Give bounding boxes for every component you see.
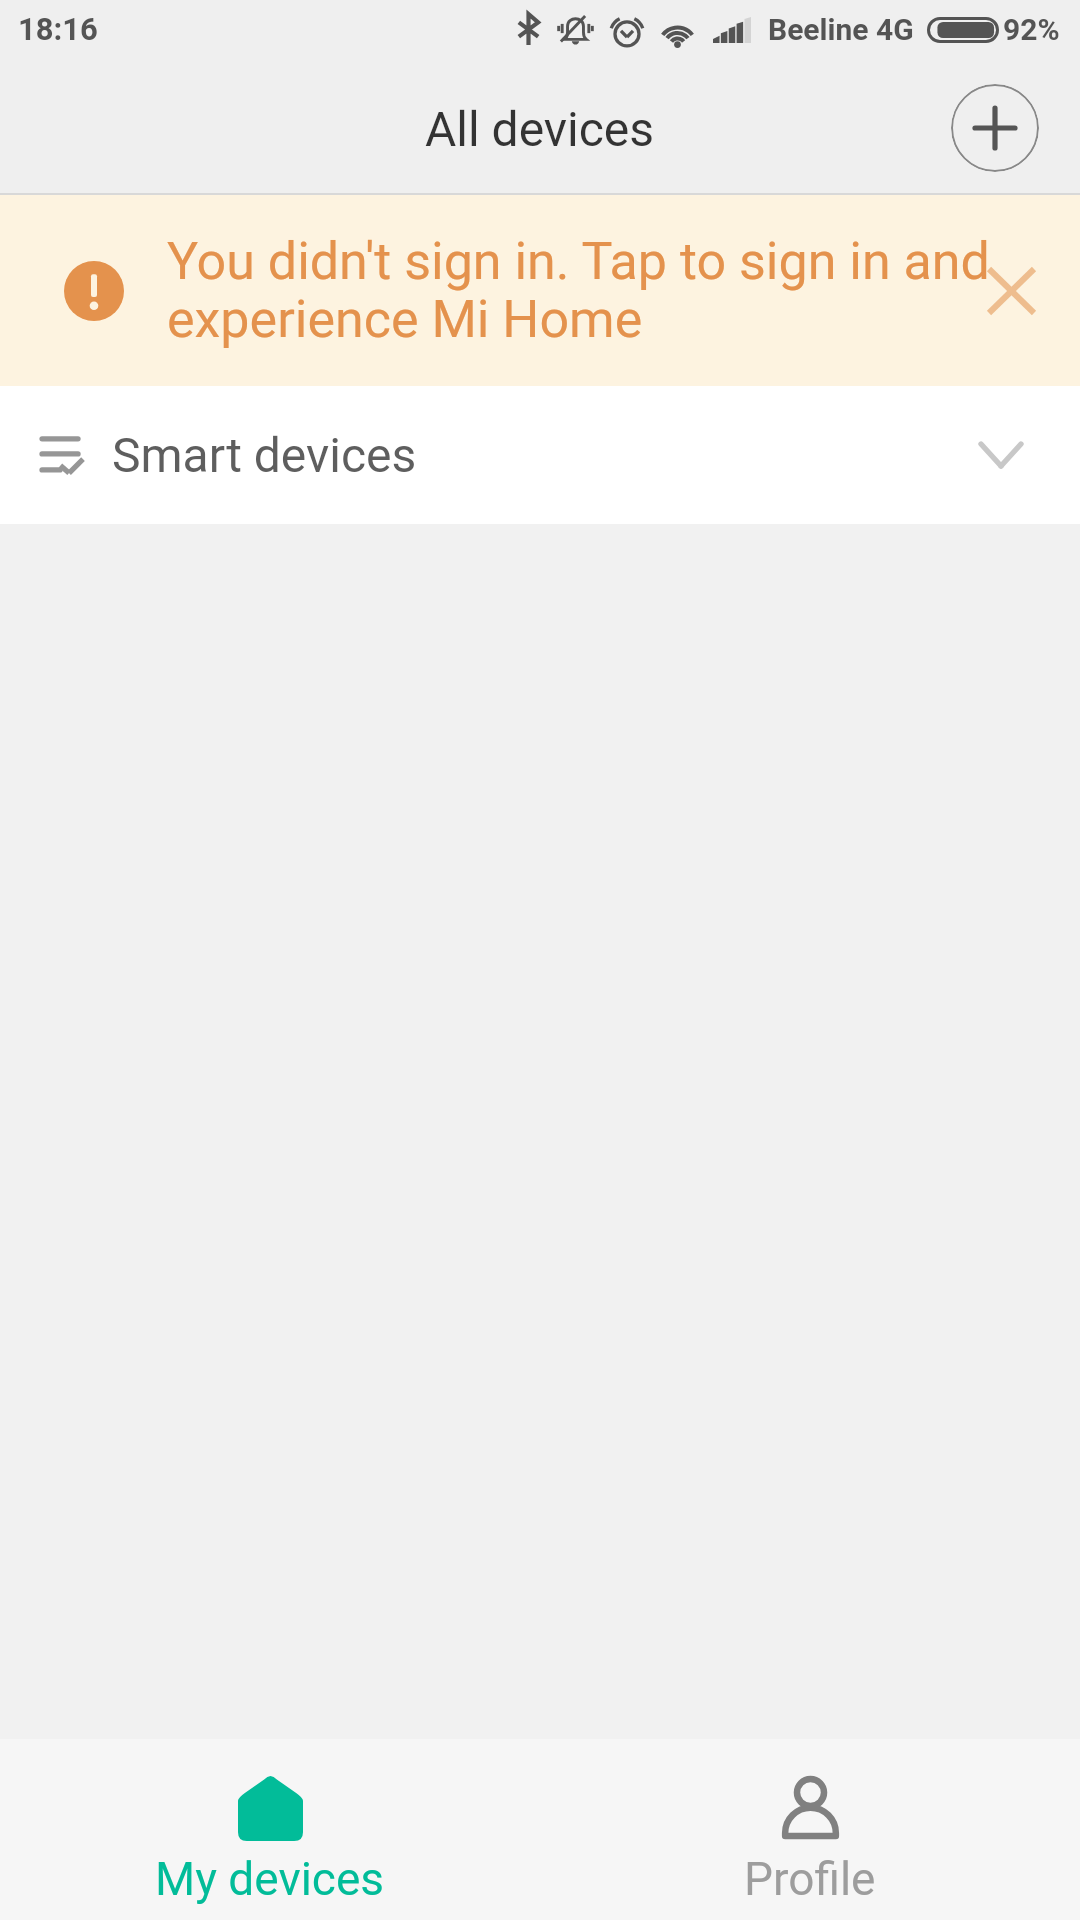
button[interactable]: Add device [951, 84, 1039, 172]
staticText: My devices [155, 1852, 385, 1906]
button[interactable]: My devices [0, 1739, 540, 1920]
button[interactable]: You didn't sign in. Tap to sign in and e… [0, 195, 1080, 386]
button[interactable]: Smart devices [0, 386, 1080, 524]
staticText: Profile [744, 1852, 876, 1906]
button[interactable]: Dismiss [966, 245, 1057, 336]
staticText: Smart devices [112, 427, 417, 483]
staticText: Beeline 4G [768, 12, 914, 47]
button[interactable]: Profile [540, 1739, 1080, 1920]
staticText: All devices [425, 101, 655, 157]
staticText: 18:16 [18, 11, 98, 47]
staticText: You didn't sign in. Tap to sign in and e… [167, 231, 1018, 350]
staticText: 92% [1003, 12, 1060, 47]
